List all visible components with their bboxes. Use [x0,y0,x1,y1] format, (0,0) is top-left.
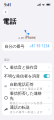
staticText: 通話の転送 [10,105,30,110]
staticText: この iPhone [18,36,36,39]
button[interactable]: 着信拒否した連絡先 [2,92,52,103]
staticText: +81 90 1234 [30,44,50,48]
staticText: 不明な発信者を消音 [4,74,40,78]
staticText: 自動電話応答 [10,82,34,87]
staticText: 着信とメッセージを拒否 [10,101,43,105]
button[interactable]: 自動電話応答 [2,81,52,92]
button[interactable]: 戻る [2,9,9,15]
staticText: 着信拒否した連絡先 [10,91,42,101]
staticText: 通話 [4,58,10,61]
staticText: 着信音と操作音 [10,65,38,70]
button[interactable]: 不明な発信者を消音 [2,72,52,80]
staticText: 自分の番号 [4,44,24,49]
button[interactable]: 自分の番号 [2,42,52,51]
staticText: 9:41 [4,2,11,7]
button[interactable]: 着信音と操作音 [2,63,52,72]
staticText: ほかの番号へ転送します [10,110,43,114]
staticText: 電話 [3,17,17,26]
staticText: かかってきた電話に応答 [10,87,43,91]
button[interactable]: 通話の転送 [2,104,52,115]
